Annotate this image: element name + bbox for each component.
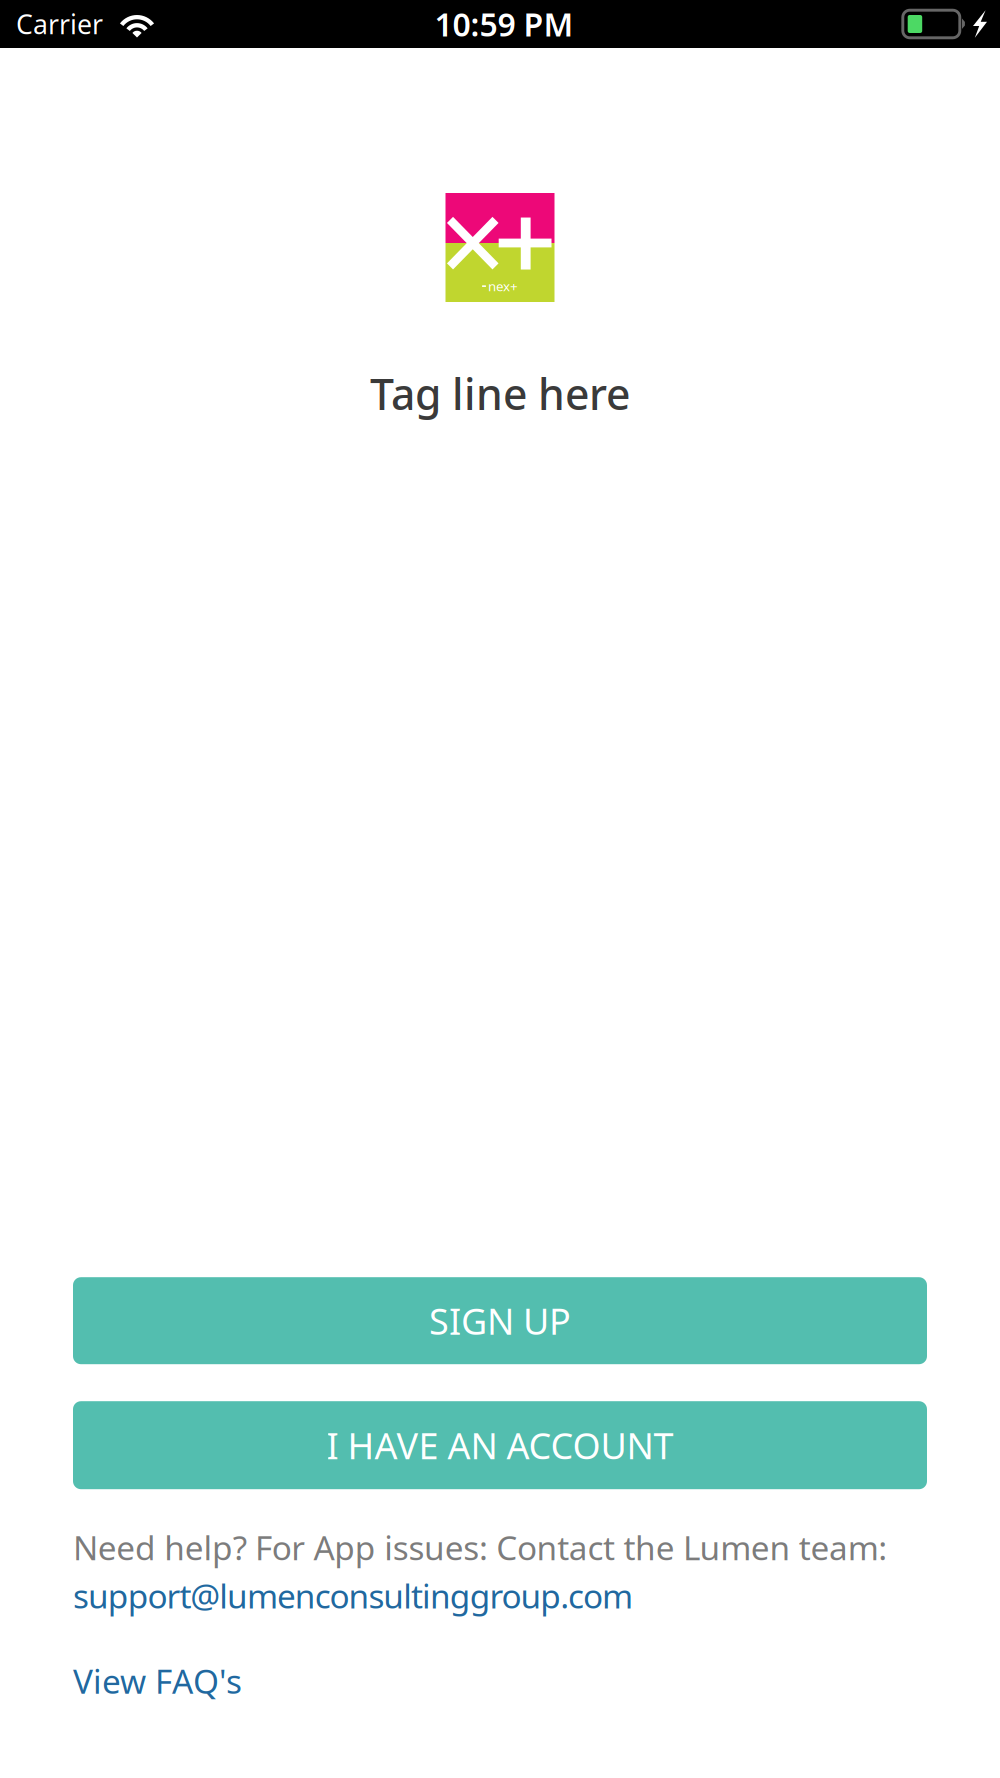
button[interactable]: I HAVE AN ACCOUNT [73, 1401, 927, 1489]
staticText: I HAVE AN ACCOUNT [326, 1421, 673, 1469]
staticText: support@lumenconsultinggroup.com [73, 1573, 633, 1618]
button[interactable]: SIGN UP [73, 1277, 927, 1364]
staticText: View FAQ's [73, 1659, 242, 1703]
staticText: Tag line here [370, 365, 630, 422]
staticText: Carrier [16, 6, 103, 42]
button[interactable]: support@lumenconsultinggroup.com [73, 1573, 633, 1618]
staticText: nex+ [488, 277, 518, 295]
staticText: SIGN UP [429, 1297, 571, 1345]
button[interactable]: View FAQ's [73, 1659, 242, 1703]
staticText: 10:59 PM [434, 3, 573, 45]
staticText: Need help? For App issues: Contact the L… [73, 1525, 887, 1569]
